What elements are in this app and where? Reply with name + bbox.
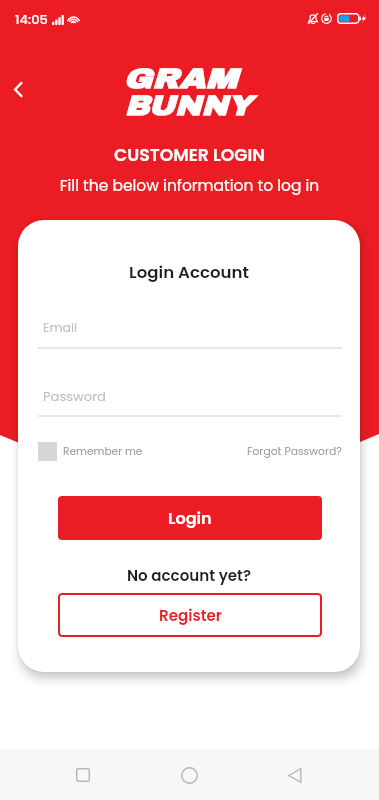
staticText: BUNNY (125, 90, 252, 120)
button[interactable]: Forgot Password? (247, 444, 342, 459)
button[interactable]: Back (273, 753, 317, 797)
button[interactable]: Login (58, 496, 322, 540)
staticText: Password (43, 387, 106, 405)
staticText: GRAM (123, 63, 238, 93)
staticText: CUSTOMER LOGIN (0, 143, 379, 167)
staticText: No account yet? (18, 565, 360, 586)
staticText: Login (168, 507, 212, 530)
staticText: Fill the below information to log in (0, 175, 379, 197)
button[interactable]: Back (3, 74, 33, 104)
staticText: Register (159, 605, 222, 626)
staticText: Login Account (18, 261, 360, 284)
button[interactable]: Recent apps (61, 753, 105, 797)
staticText: Remember me (63, 444, 143, 459)
button[interactable]: Home (167, 753, 211, 797)
staticText: Forgot Password? (247, 444, 342, 459)
staticText: Email (43, 319, 78, 337)
button[interactable]: Remember me (38, 442, 143, 461)
staticText: 14:05 (15, 10, 48, 28)
button[interactable]: Register (58, 593, 322, 637)
